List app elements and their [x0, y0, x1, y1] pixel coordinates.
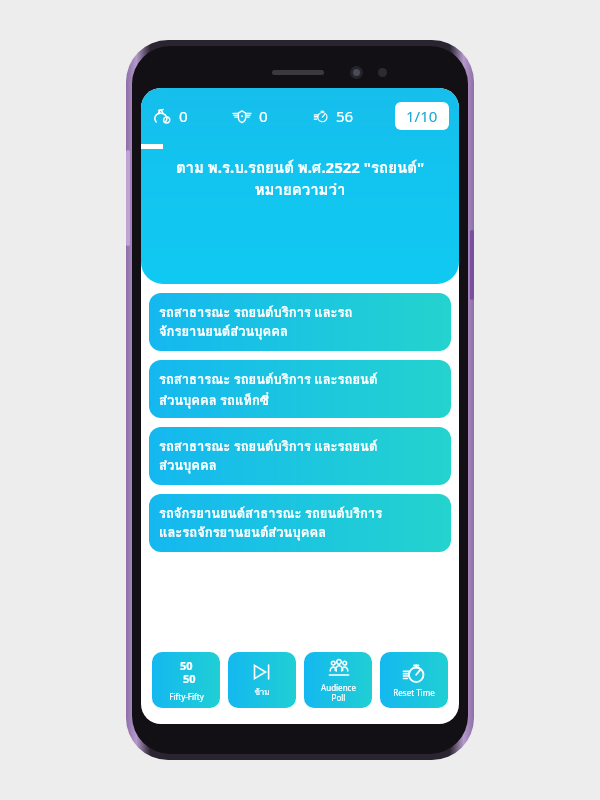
staticText: รถสาธารณะ รถยนต์บริการ และรถยนต์ ส่วนบุค… [159, 436, 378, 476]
staticText: รถสาธารณะ รถยนต์บริการ และรถยนต์ ส่วนบุค… [159, 369, 378, 410]
button[interactable]: 0 [233, 106, 314, 126]
staticText: รถสาธารณะ รถยนต์บริการ และรถ จักรยานยนต์… [159, 302, 353, 342]
staticText: 1/10 [406, 106, 438, 126]
button[interactable]: 0 [153, 106, 233, 126]
button[interactable]: Fifty Fifty [152, 652, 220, 708]
button[interactable]: รถสาธารณะ รถยนต์บริการ และรถยนต์ ส่วนบุค… [149, 360, 451, 418]
button[interactable]: รถสาธารณะ รถยนต์บริการ และรถ จักรยานยนต์… [149, 293, 451, 351]
staticText: 50 [183, 671, 196, 686]
button[interactable]: รถจักรยานยนต์สาธารณะ รถยนต์บริการ และรถจ… [149, 494, 451, 552]
button[interactable]: Audience Poll [304, 652, 372, 708]
button[interactable]: 56 [314, 106, 395, 126]
button[interactable]: Skip [228, 652, 296, 708]
staticText: ตาม พ.ร.บ.รถยนต์ พ.ศ.2522 "รถยนต์" หมายค… [155, 156, 445, 202]
staticText: ข้าม [254, 686, 270, 699]
staticText: Audience Poll [321, 682, 356, 703]
button[interactable]: รถสาธารณะ รถยนต์บริการ และรถยนต์ ส่วนบุค… [149, 427, 451, 485]
staticText: Fifty-Fifty [169, 691, 204, 702]
button[interactable]: 1/10 [395, 102, 449, 130]
staticText: 0 [259, 106, 268, 126]
staticText: 56 [336, 106, 354, 126]
button[interactable]: Reset Time [380, 652, 448, 708]
staticText: 0 [179, 106, 188, 126]
staticText: 50 [180, 658, 193, 673]
staticText: รถจักรยานยนต์สาธารณะ รถยนต์บริการ และรถจ… [159, 503, 383, 543]
staticText: Reset Time [393, 687, 435, 698]
